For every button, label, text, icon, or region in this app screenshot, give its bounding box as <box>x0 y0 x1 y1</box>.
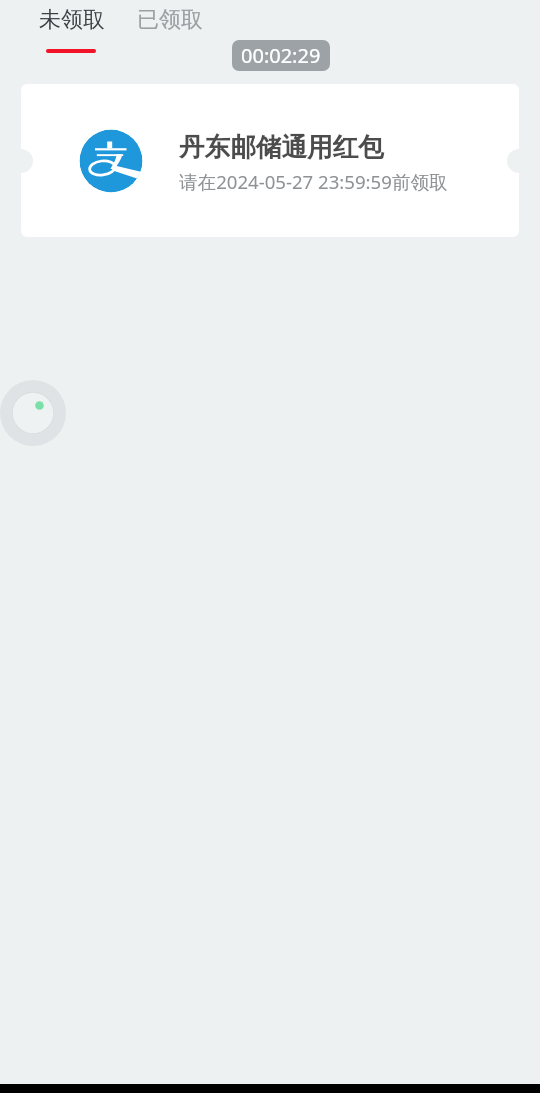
staticText: 未领取 <box>39 6 105 34</box>
staticText: 已领取 <box>137 6 203 34</box>
staticText: 丹东邮储通用红包 <box>179 131 384 163</box>
button[interactable]: 已领取 <box>137 6 203 34</box>
button[interactable]: 丹东邮储通用红包 <box>21 84 519 237</box>
button[interactable]: 未领取 <box>39 6 105 54</box>
button[interactable]: Assistive touch <box>0 380 66 446</box>
button[interactable]: 00:02:29 <box>232 40 330 71</box>
staticText: 请在2024-05-27 23:59:59前领取 <box>179 169 448 194</box>
staticText: 00:02:29 <box>241 42 321 69</box>
